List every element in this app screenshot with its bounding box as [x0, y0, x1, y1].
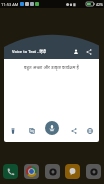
button[interactable]: Phone [3, 164, 18, 179]
button[interactable]: Share result [68, 125, 80, 137]
staticText: 11:53 AM [1, 2, 19, 7]
button[interactable]: Delete [7, 125, 19, 137]
button[interactable]: Camera [86, 164, 101, 179]
button[interactable]: Account [71, 47, 81, 57]
button[interactable]: Chrome [24, 164, 39, 179]
button[interactable]: Camera [45, 164, 60, 179]
button[interactable]: Copy [26, 125, 38, 137]
button[interactable]: Start recording [45, 121, 59, 135]
button[interactable]: Messages [65, 164, 80, 179]
button[interactable]: Share [84, 47, 94, 57]
button[interactable]: Language [84, 125, 96, 137]
staticText: बहुत अच्छा और उत्कृष्ट कार्यक्रम है [24, 64, 79, 70]
staticText: Voice to Text - हिंदी [12, 49, 46, 54]
staticText: 42% [96, 2, 103, 7]
